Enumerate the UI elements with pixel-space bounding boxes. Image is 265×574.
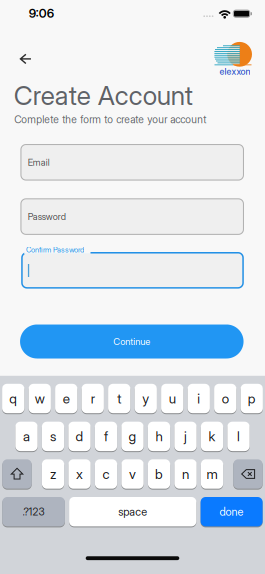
staticText: f (104, 428, 108, 445)
button[interactable]: space (69, 497, 196, 526)
staticText: m (207, 466, 218, 482)
staticText: e (63, 390, 70, 407)
button[interactable]: a (15, 422, 38, 451)
button[interactable]: done (201, 497, 263, 526)
button[interactable]: t (108, 384, 130, 413)
staticText: Create Account (14, 80, 193, 111)
staticText: s (50, 428, 56, 445)
button[interactable]: q (2, 384, 24, 413)
staticText: j (184, 428, 187, 445)
staticText: Continue (113, 336, 150, 347)
button[interactable]: .?123 (2, 497, 65, 526)
button[interactable]: g (121, 422, 144, 451)
button[interactable]: i (188, 384, 210, 413)
staticText: h (155, 428, 162, 445)
staticText: k (208, 428, 215, 445)
button[interactable]: y (135, 384, 157, 413)
button[interactable]: j (174, 422, 197, 451)
button[interactable]: b (148, 459, 170, 489)
button[interactable]: x (68, 459, 91, 489)
staticText: o (222, 390, 229, 407)
button[interactable]: c (95, 459, 117, 489)
staticText: d (75, 428, 83, 445)
staticText: .?123 (23, 505, 45, 518)
staticText: done (220, 505, 244, 518)
button[interactable]: r (82, 384, 104, 413)
staticText: elexxon (219, 66, 250, 77)
staticText: c (103, 466, 110, 482)
button[interactable]: Back (14, 47, 38, 71)
staticText: v (129, 466, 136, 482)
button[interactable]: u (161, 384, 183, 413)
staticText: y (142, 390, 149, 407)
staticText: u (169, 390, 176, 407)
staticText: Password (28, 211, 66, 222)
button[interactable]: Delete (233, 459, 263, 489)
staticText: r (91, 390, 95, 407)
staticText: i (197, 390, 200, 407)
button[interactable]: m (201, 459, 223, 489)
staticText: 9:06 (29, 6, 54, 21)
button[interactable]: Password (20, 198, 244, 235)
button[interactable]: o (214, 384, 236, 413)
button[interactable]: Confirm Password (21, 252, 244, 289)
staticText: g (128, 428, 136, 445)
staticText: w (35, 390, 45, 407)
staticText: x (76, 466, 83, 482)
button[interactable]: f (95, 422, 117, 451)
button[interactable]: l (227, 422, 250, 451)
button[interactable]: d (68, 422, 91, 451)
button[interactable]: Email (20, 144, 244, 181)
button[interactable]: p (241, 384, 263, 413)
staticText: Confirm Password (26, 245, 84, 254)
button[interactable]: h (148, 422, 170, 451)
staticText: l (237, 428, 240, 445)
staticText: Email (28, 157, 50, 168)
button[interactable]: z (42, 459, 64, 489)
staticText: b (155, 466, 163, 482)
staticText: q (9, 390, 17, 407)
button[interactable]: k (201, 422, 223, 451)
button[interactable]: w (29, 384, 51, 413)
button[interactable]: s (42, 422, 64, 451)
staticText: p (248, 390, 256, 407)
button[interactable]: Shift (2, 459, 32, 489)
staticText: Complete the form to create your account (14, 113, 206, 126)
button[interactable]: n (174, 459, 197, 489)
staticText: space (118, 505, 147, 518)
button[interactable]: Continue (20, 324, 244, 358)
button[interactable]: v (121, 459, 144, 489)
staticText: z (50, 466, 56, 482)
staticText: n (182, 466, 189, 482)
staticText: t (117, 390, 121, 407)
staticText: a (23, 428, 30, 445)
button[interactable]: e (55, 384, 77, 413)
